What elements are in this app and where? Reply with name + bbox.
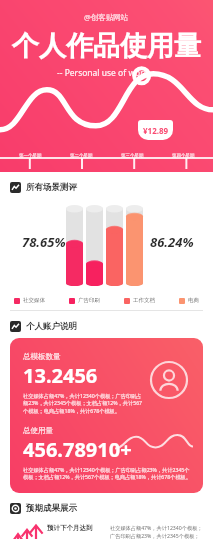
staticText: -- Personal use of work -- (57, 67, 156, 79)
other: eye (10, 503, 21, 514)
staticText: 456.78910+ (23, 436, 132, 463)
staticText: 预计下个月达到 (47, 524, 93, 532)
staticText: 总模板数量 (23, 352, 61, 361)
staticText: 第四个星期 (172, 153, 195, 159)
staticText: 第三个星期 (121, 153, 144, 159)
staticText: 所有场景测评 (26, 182, 77, 193)
staticText: 电商 (188, 297, 199, 304)
button[interactable]: 工作文档 (124, 297, 155, 304)
button[interactable]: chart (10, 182, 213, 193)
button[interactable]: 社交媒体 (14, 297, 45, 304)
staticText: 78.65% (22, 233, 66, 251)
button[interactable]: 广告印刷 (69, 297, 100, 304)
other: chart (10, 182, 21, 193)
staticText: 第一个星期 (19, 153, 42, 159)
button[interactable]: eye (10, 503, 213, 514)
staticText: 社交媒体占额47%，共计12340个模板；广告印刷占额23%，共计2345个模板… (23, 466, 193, 481)
button[interactable]: ¥12.89 (138, 120, 173, 140)
staticText: 预期成果展示 (26, 503, 77, 514)
staticText: 工作文档 (133, 297, 155, 304)
staticText: ¥12.89 (143, 125, 169, 136)
staticText: 个人账户说明 (26, 321, 77, 332)
staticText: 社交媒体占额47%，共计12340个模板；广告印刷占额23%，共计2345个模板… (110, 524, 203, 539)
staticText: 86.24% (150, 233, 194, 251)
staticText: 社交媒体 (23, 297, 45, 304)
staticText: @创客贴网站 (84, 12, 129, 22)
staticText: 第二个星期 (70, 153, 93, 159)
button[interactable]: 总模板数量 (10, 338, 203, 493)
staticText: 社交媒体占额47%，共计12340个模板；广告印刷占额23%，共计2345个模板… (23, 392, 145, 415)
staticText: 总使用量 (23, 426, 53, 435)
staticText: 13.2456 (23, 362, 98, 389)
button[interactable]: chart (10, 321, 213, 332)
button[interactable]: 电商 (179, 297, 199, 304)
staticText: 广告印刷 (78, 297, 100, 304)
other: chart (10, 321, 21, 332)
staticText: 个人作品使用量 (12, 29, 201, 63)
